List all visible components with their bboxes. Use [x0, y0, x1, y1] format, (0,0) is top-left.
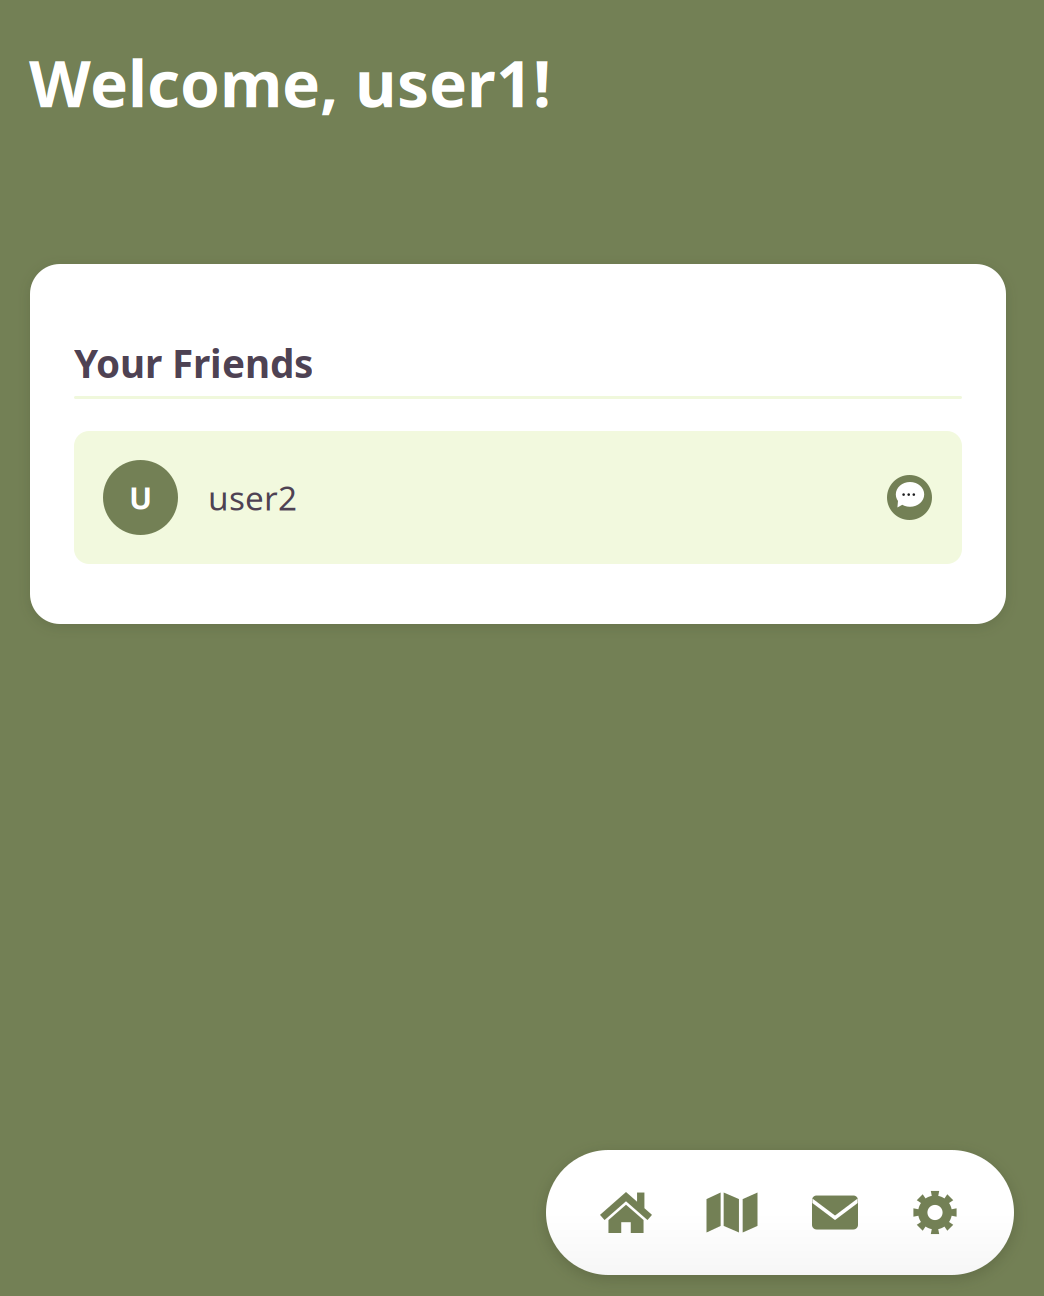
button[interactable]: U: [74, 431, 962, 564]
staticText: Your Friends: [74, 337, 313, 389]
button[interactable]: Message user2: [887, 475, 932, 520]
button[interactable]: Settings: [883, 1150, 987, 1275]
button[interactable]: Mail: [783, 1150, 887, 1275]
staticText: U: [129, 477, 152, 518]
staticText: Welcome, user1!: [29, 40, 551, 125]
button[interactable]: Home: [574, 1150, 678, 1275]
staticText: user2: [208, 475, 297, 520]
button[interactable]: Map: [680, 1150, 784, 1275]
